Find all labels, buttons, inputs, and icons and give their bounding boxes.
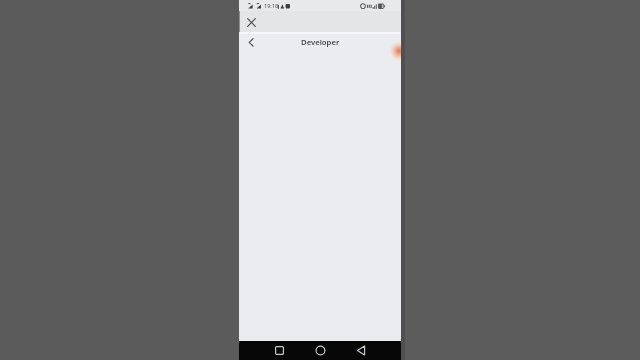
staticText: 19:18 (264, 2, 279, 9)
staticText: Developer (301, 37, 340, 47)
button[interactable] (272, 343, 287, 358)
button[interactable] (354, 343, 369, 358)
button[interactable] (313, 343, 328, 358)
button[interactable] (244, 34, 259, 50)
button[interactable] (243, 14, 259, 30)
